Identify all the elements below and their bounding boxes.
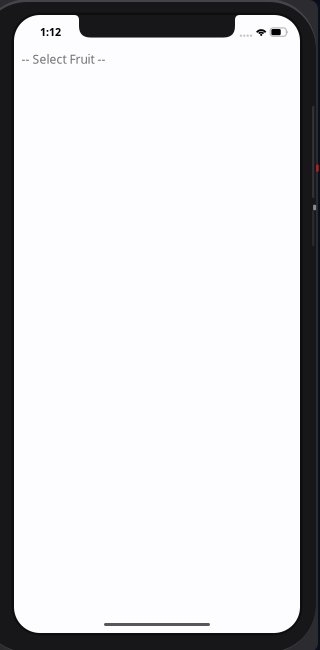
- staticText: 1:12: [40, 25, 61, 39]
- staticText: -- Select Fruit --: [22, 51, 106, 67]
- button[interactable]: -- Select Fruit --: [22, 52, 108, 66]
